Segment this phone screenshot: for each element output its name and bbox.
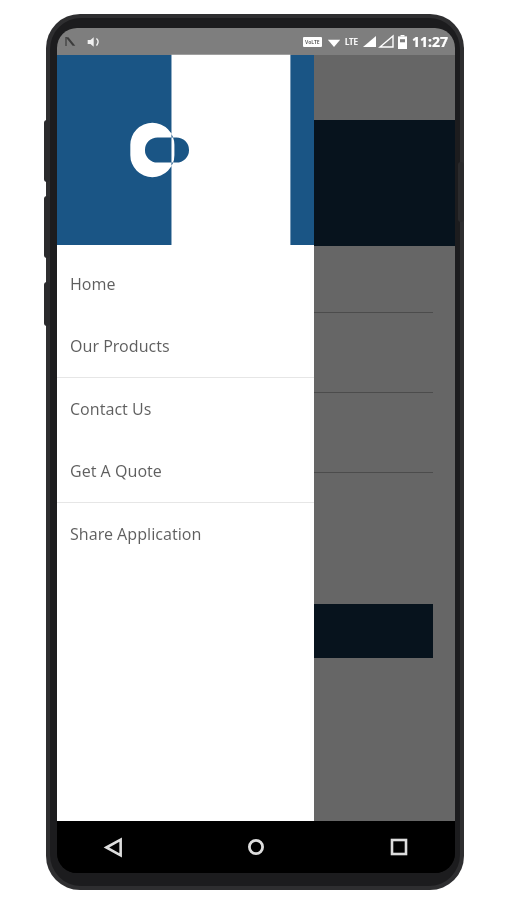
button[interactable]: Contact Us <box>57 378 314 440</box>
button[interactable]: Home <box>234 825 278 869</box>
button[interactable]: Home <box>57 253 314 315</box>
button[interactable]: Back <box>91 825 135 869</box>
staticText: Share Application <box>70 523 202 545</box>
staticText: VoLTE <box>305 39 320 46</box>
staticText: Get A Quote <box>70 460 162 482</box>
staticText: LTE <box>345 36 359 47</box>
staticText: Our Products <box>70 335 170 357</box>
staticText: Home <box>70 273 116 295</box>
button[interactable]: Recent apps <box>377 825 421 869</box>
staticText: 11:27 <box>412 32 448 51</box>
button[interactable] <box>57 55 314 245</box>
staticText: Reach us <box>203 166 309 200</box>
button[interactable]: Our Products <box>57 315 314 377</box>
button[interactable]: Reach us <box>57 120 455 246</box>
button[interactable]: Get A Quote <box>57 440 314 502</box>
button[interactable]: Share Application <box>57 503 314 565</box>
button[interactable]: SUBMIT <box>79 604 433 658</box>
staticText: Contact Us <box>70 398 152 420</box>
